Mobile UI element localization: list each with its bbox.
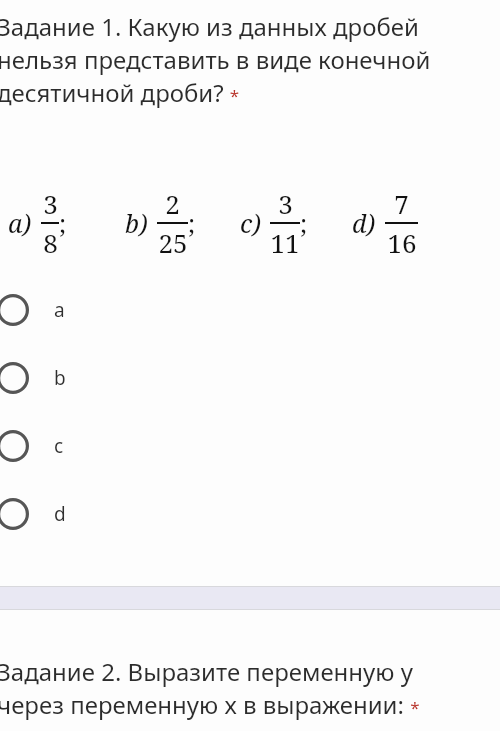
staticText: d xyxy=(54,501,66,527)
staticText: d) xyxy=(352,206,376,240)
other: Option b xyxy=(0,362,29,394)
button[interactable]: Option a xyxy=(0,287,500,333)
button[interactable]: Option c xyxy=(0,423,500,469)
staticText: b xyxy=(54,365,66,391)
button[interactable]: Option b xyxy=(0,355,500,401)
staticText: 16 xyxy=(387,225,417,260)
staticText: 3 xyxy=(43,186,58,221)
other: Option c xyxy=(0,430,29,462)
staticText: 8 xyxy=(43,225,58,260)
staticText: 7 xyxy=(394,186,409,221)
other: Option a xyxy=(0,294,29,326)
staticText: нельзя представить в виде конечной xyxy=(0,43,431,76)
staticText: a) xyxy=(8,206,32,240)
other: Option d xyxy=(0,498,29,530)
staticText: a xyxy=(54,297,65,323)
staticText: 11 xyxy=(270,225,300,260)
staticText: десятичной дроби? * xyxy=(0,76,240,109)
staticText: Задание 1. Какую из данных дробей xyxy=(0,10,419,43)
staticText: 25 xyxy=(158,225,188,260)
staticText: через переменную х в выражении: * xyxy=(0,688,420,721)
staticText: 2 xyxy=(165,186,180,221)
staticText: ; xyxy=(300,206,308,240)
staticText: c) xyxy=(240,206,261,240)
staticText: 3 xyxy=(278,186,293,221)
staticText: b) xyxy=(125,206,148,240)
staticText: ; xyxy=(188,206,196,240)
button[interactable]: Option d xyxy=(0,491,500,537)
staticText: ; xyxy=(59,206,67,240)
staticText: Задание 2. Выразите переменную у xyxy=(0,655,413,688)
staticText: c xyxy=(54,433,64,459)
